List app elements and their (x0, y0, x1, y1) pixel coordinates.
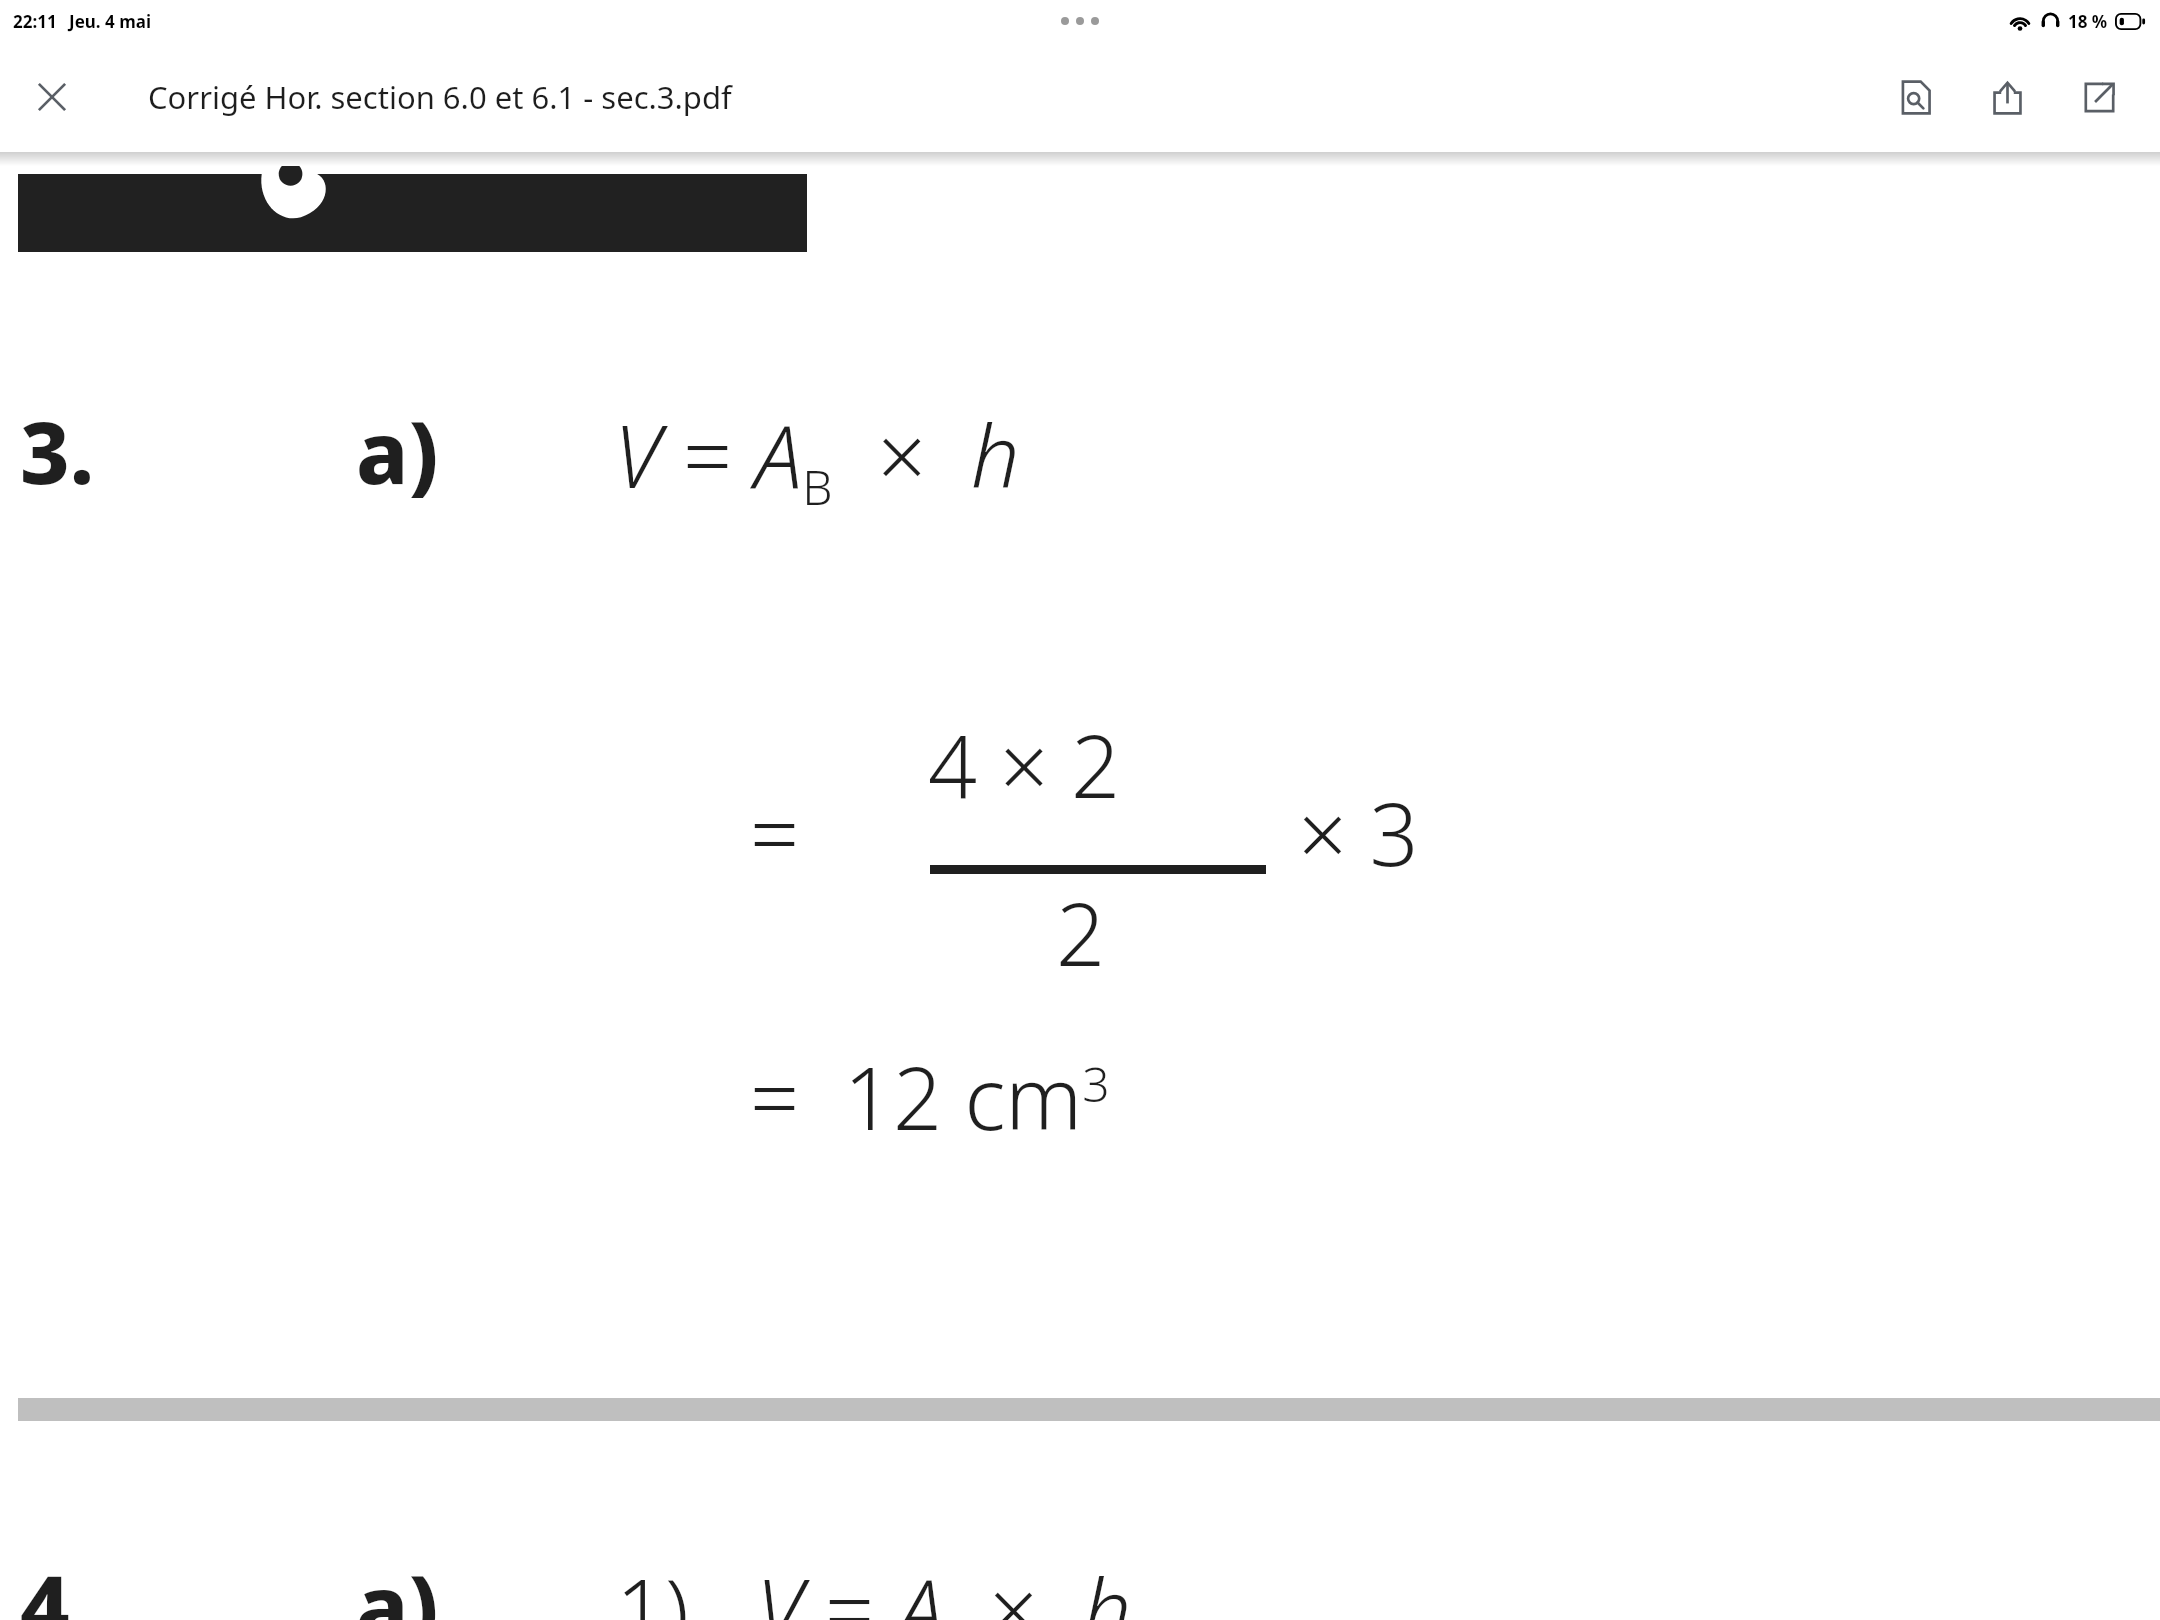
staticText: × 3 (1298, 774, 1419, 891)
staticText: 22:11 (13, 10, 57, 33)
staticText: 2 (1056, 874, 1106, 991)
staticText: = 12 cm3 (750, 1038, 1110, 1155)
staticText: 4. (20, 1546, 95, 1620)
button[interactable]: Close (20, 65, 84, 129)
staticText: 18 % (2068, 10, 2108, 33)
button[interactable]: Open in another app (2068, 66, 2130, 128)
staticText: V = AB × h (614, 396, 1020, 519)
staticText: Jeu. 4 mai (69, 10, 152, 33)
staticText: a) (356, 1546, 439, 1620)
staticText: a) (356, 392, 439, 509)
staticText: = (750, 774, 800, 891)
staticText: 3. (20, 392, 95, 509)
staticText: 1) V = A × h (616, 1550, 1132, 1620)
button[interactable]: Share (1976, 66, 2038, 128)
button[interactable]: Find in document (1884, 66, 1946, 128)
staticText: 4 × 2 (928, 706, 1121, 823)
staticText: Corrigé Hor. section 6.0 et 6.1 - sec.3.… (148, 76, 732, 118)
